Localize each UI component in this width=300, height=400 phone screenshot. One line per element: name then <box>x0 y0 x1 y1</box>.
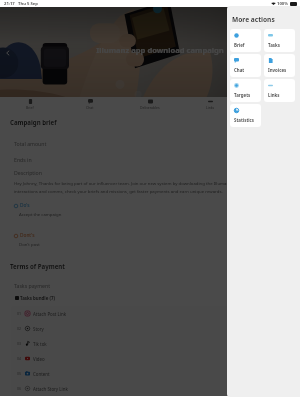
staticText: 02 <box>17 326 22 331</box>
staticText: Chat <box>234 67 245 73</box>
button[interactable]: 02 <box>17 321 290 336</box>
staticText: Hey Johnny, Thanks for being part of our… <box>14 180 288 194</box>
button[interactable]: Invoices <box>264 54 295 77</box>
staticText: More actions <box>232 15 275 24</box>
button[interactable]: Statistics <box>230 104 261 127</box>
staticText: Attach Post Link <box>33 311 67 317</box>
button[interactable]: Chat <box>60 97 120 112</box>
button[interactable]: Chat <box>230 54 261 77</box>
button[interactable]: Tasks <box>264 29 295 52</box>
staticText: Deliverables <box>140 105 160 110</box>
staticText: Links <box>206 105 215 110</box>
staticText: Don't post <box>19 241 40 247</box>
button[interactable]: Back <box>1 46 14 59</box>
staticText: 01 <box>17 311 22 316</box>
staticText: Story <box>33 326 44 332</box>
staticText: 05 <box>17 371 22 376</box>
button[interactable]: Brief <box>230 29 261 52</box>
staticText: Dont's <box>20 232 35 239</box>
staticText: 06 <box>17 386 22 391</box>
staticText: 04 <box>17 356 22 361</box>
staticText: Brief <box>234 42 245 48</box>
button[interactable]: 04 <box>17 351 290 366</box>
button[interactable]: More <box>240 97 300 112</box>
button[interactable]: 05 <box>17 366 290 381</box>
staticText: Tik tok <box>33 341 47 347</box>
button[interactable]: 03 <box>17 336 290 351</box>
staticText: Brief <box>26 105 34 110</box>
button[interactable]: Links <box>180 97 240 112</box>
staticText: Tasks <box>268 42 280 48</box>
staticText: 21:17 <box>4 1 15 7</box>
staticText: Illumanz app download campaign <box>96 45 224 55</box>
staticText: Do's <box>20 202 30 209</box>
staticText: Accept the campaign <box>19 211 62 217</box>
staticText: Thu 5 Sep <box>18 1 38 7</box>
staticText: Tasks bundle (7) <box>20 295 55 301</box>
staticText: Chat <box>86 105 94 110</box>
staticText: Description <box>14 169 42 176</box>
staticText: 03 <box>17 341 22 346</box>
staticText: Terms of Payment <box>10 262 65 270</box>
button[interactable]: 01 <box>17 306 290 321</box>
staticText: Video <box>33 356 45 362</box>
button[interactable]: Brief <box>0 97 60 112</box>
staticText: Total amount <box>14 140 47 147</box>
staticText: Content <box>33 371 50 377</box>
staticText: Tasks payment <box>14 282 51 289</box>
staticText: Campaign brief <box>10 118 57 126</box>
staticText: 100% <box>277 1 288 7</box>
staticText: Statistics <box>234 117 255 123</box>
staticText: Invoices <box>268 67 287 73</box>
staticText: Links <box>268 92 280 98</box>
button[interactable]: Deliverables <box>120 97 180 112</box>
button[interactable]: Links <box>264 79 295 102</box>
staticText: Targets <box>234 92 251 98</box>
staticText: Attach Story Link <box>33 386 68 392</box>
button[interactable]: 06 <box>17 381 290 396</box>
staticText: Ends in <box>14 156 32 163</box>
button[interactable]: Targets <box>230 79 261 102</box>
